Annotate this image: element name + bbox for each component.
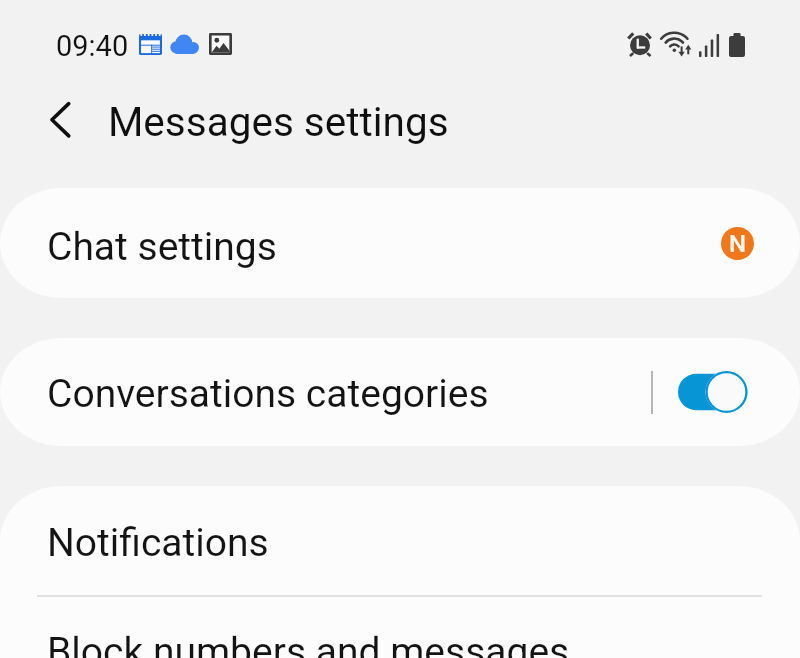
staticText: Notifications	[47, 520, 269, 566]
staticText: Chat settings	[47, 224, 277, 270]
button[interactable]: Chat settings	[0, 188, 800, 298]
staticText: 09:40	[56, 29, 129, 63]
staticText: N	[729, 230, 747, 258]
button[interactable]: Navigate up	[34, 93, 86, 145]
staticText: Block numbers and messages	[47, 629, 570, 658]
staticText: Conversations categories	[47, 371, 489, 417]
button[interactable]: Conversations categories	[0, 369, 651, 415]
button[interactable]: Block numbers and messages	[0, 597, 800, 658]
staticText: Messages settings	[108, 98, 449, 145]
button[interactable]: Conversations categories toggle	[678, 370, 748, 414]
button[interactable]: Notifications	[0, 486, 800, 595]
